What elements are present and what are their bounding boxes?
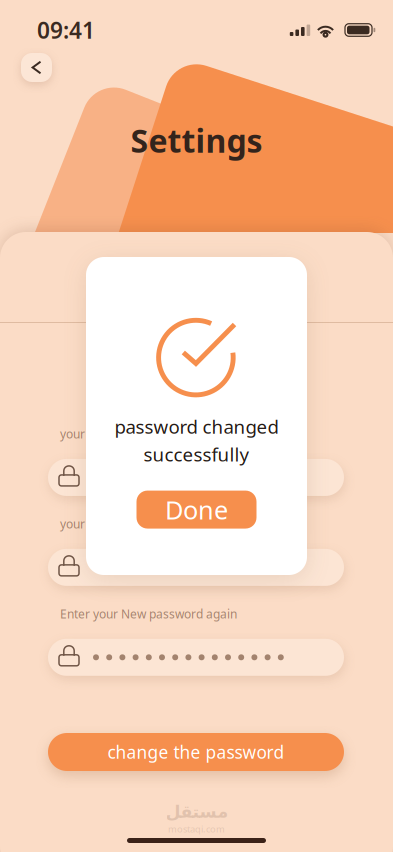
staticText: password changed [114,414,278,439]
staticText: مستقل [165,802,228,822]
staticText: Done [165,493,228,526]
button[interactable]: Back [21,53,52,82]
staticText: Settings [130,119,262,161]
staticText: 09:41 [37,15,95,45]
staticText: Enter your New password again [60,606,237,622]
staticText: your old password [60,426,162,442]
staticText: successfully [143,442,249,467]
button[interactable]: Done [136,491,256,529]
button[interactable]: change the password [48,733,344,771]
staticText: your new password [60,516,168,532]
staticText: change the password [107,740,284,763]
staticText: mostaqi.com [168,823,225,835]
